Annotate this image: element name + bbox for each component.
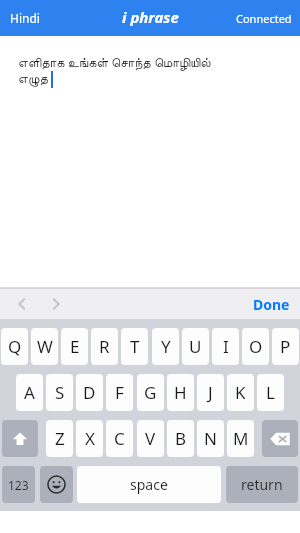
button[interactable]: D: [76, 374, 103, 411]
staticText: Q: [8, 335, 22, 358]
button[interactable]: Emoji: [40, 466, 73, 503]
staticText: W: [37, 335, 53, 358]
button[interactable]: C: [106, 420, 133, 457]
button[interactable]: 123: [2, 466, 35, 503]
button[interactable]: F: [106, 374, 133, 411]
staticText: X: [85, 427, 95, 450]
staticText: O: [249, 335, 263, 358]
button[interactable]: J: [197, 374, 224, 411]
button[interactable]: Z: [46, 420, 73, 457]
button[interactable]: Q: [1, 328, 28, 365]
staticText: S: [55, 381, 65, 404]
button[interactable]: space: [77, 466, 221, 503]
staticText: T: [130, 335, 140, 358]
button[interactable]: Next field: [42, 290, 70, 318]
button[interactable]: B: [167, 420, 194, 457]
staticText: R: [99, 335, 110, 358]
staticText: D: [83, 381, 96, 404]
button[interactable]: L: [257, 374, 284, 411]
button[interactable]: எளிதாக உங்கள் சொந்த மொழியில்: [0, 36, 300, 288]
staticText: J: [208, 381, 213, 404]
button[interactable]: P: [272, 328, 299, 365]
button[interactable]: Done: [253, 295, 290, 314]
staticText: 123: [8, 477, 29, 493]
staticText: Connected: [236, 11, 292, 26]
staticText: I: [223, 335, 229, 358]
button[interactable]: U: [182, 328, 209, 365]
staticText: H: [174, 381, 187, 404]
staticText: E: [70, 335, 80, 358]
staticText: return: [241, 475, 283, 494]
staticText: G: [144, 381, 157, 404]
staticText: space: [130, 475, 168, 494]
staticText: Hindi: [10, 10, 40, 26]
staticText: U: [189, 335, 202, 358]
staticText: Z: [55, 427, 65, 450]
button[interactable]: W: [31, 328, 58, 365]
button[interactable]: N: [197, 420, 224, 457]
button[interactable]: G: [137, 374, 164, 411]
staticText: C: [114, 427, 125, 450]
staticText: P: [280, 335, 291, 358]
staticText: Done: [253, 295, 290, 314]
button[interactable]: V: [137, 420, 164, 457]
button[interactable]: return: [226, 466, 298, 503]
button[interactable]: Previous field: [8, 290, 36, 318]
button[interactable]: Backspace: [262, 420, 298, 457]
button[interactable]: O: [242, 328, 269, 365]
staticText: N: [204, 427, 217, 450]
staticText: எளிதாக உங்கள் சொந்த மொழியில்: [18, 53, 211, 71]
staticText: M: [233, 427, 249, 450]
staticText: A: [24, 381, 35, 404]
staticText: L: [266, 381, 275, 404]
button[interactable]: E: [61, 328, 88, 365]
button[interactable]: T: [121, 328, 148, 365]
staticText: எழுத: [18, 73, 48, 86]
staticText: Y: [161, 335, 171, 358]
button[interactable]: H: [167, 374, 194, 411]
button[interactable]: S: [46, 374, 73, 411]
staticText: B: [175, 427, 187, 450]
button[interactable]: Hindi: [10, 10, 40, 26]
button[interactable]: X: [76, 420, 103, 457]
staticText: F: [115, 381, 124, 404]
staticText: i phrase: [122, 7, 179, 27]
button[interactable]: M: [227, 420, 254, 457]
staticText: V: [145, 427, 156, 450]
button[interactable]: Shift: [2, 420, 38, 457]
staticText: K: [235, 381, 246, 404]
button[interactable]: A: [16, 374, 43, 411]
button[interactable]: Connected: [236, 11, 292, 26]
button[interactable]: I: [212, 328, 239, 365]
button[interactable]: Y: [152, 328, 179, 365]
button[interactable]: K: [227, 374, 254, 411]
button[interactable]: R: [91, 328, 118, 365]
